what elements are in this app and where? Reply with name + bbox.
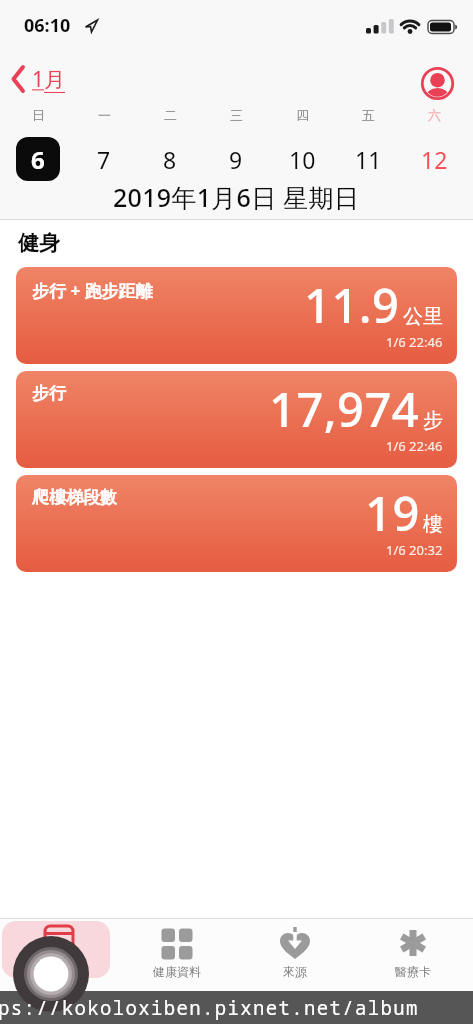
button[interactable]: 醫療卡 (373, 921, 453, 983)
staticText: 四 (296, 107, 309, 123)
staticText: 健身 (18, 230, 60, 256)
button[interactable]: 7 (97, 144, 111, 175)
staticText: 公里 (403, 304, 443, 329)
staticText: 06:10 (24, 13, 71, 38)
button[interactable]: 12 (421, 144, 448, 175)
button[interactable]: 10 (289, 144, 316, 175)
staticText: 醫療卡 (395, 964, 431, 979)
staticText: 爬樓梯段數 (32, 487, 117, 508)
staticText: 1/6 20:32 (386, 541, 443, 559)
button[interactable] (421, 67, 454, 100)
staticText: 6 (31, 143, 45, 176)
staticText: 樓 (423, 512, 443, 537)
staticText: 11.9 (304, 273, 400, 337)
button[interactable]: 爬樓梯段數 (16, 475, 457, 572)
staticText: ps://kokoloxiben.pixnet.net/album (0, 995, 419, 1021)
staticText: 健康資料 (153, 964, 201, 979)
button[interactable]: 健康資料 (137, 921, 217, 983)
button[interactable]: 6 (16, 137, 60, 181)
staticText: 三 (230, 107, 243, 123)
staticText: 1月 (32, 65, 66, 94)
button[interactable]: 11 (355, 144, 382, 175)
staticText: 二 (164, 107, 177, 123)
staticText: 步行 (32, 383, 66, 404)
staticText: 1/6 22:46 (386, 333, 443, 351)
staticText: 2019年1月6日 星期日 (113, 180, 360, 214)
button[interactable]: 來源 (255, 921, 335, 983)
staticText: 一 (98, 107, 111, 123)
button[interactable]: 9 (229, 144, 243, 175)
button[interactable]: 步行 + 跑步距離 (16, 267, 457, 364)
staticText: 六 (428, 107, 441, 123)
staticText: 17,974 (269, 377, 420, 441)
staticText: 來源 (283, 964, 307, 979)
staticText: 1/6 22:46 (386, 437, 443, 455)
staticText: 19 (365, 481, 420, 545)
button[interactable]: 步行 (16, 371, 457, 468)
staticText: 步行 + 跑步距離 (32, 279, 153, 302)
button[interactable] (2, 921, 110, 978)
staticText: 五 (362, 107, 375, 123)
staticText: 步 (423, 408, 443, 433)
staticText: 日 (32, 107, 45, 123)
button[interactable]: 1月 (10, 64, 66, 94)
button[interactable]: 8 (163, 144, 177, 175)
